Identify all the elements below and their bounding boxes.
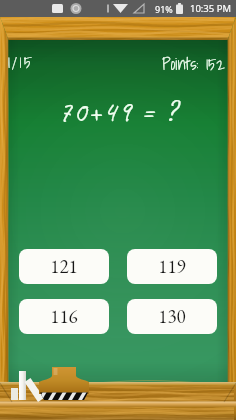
staticText: 116: [50, 304, 78, 329]
button[interactable]: 130: [127, 299, 217, 334]
button[interactable]: 119: [127, 249, 217, 284]
staticText: 1/15: [8, 48, 34, 75]
staticText: 91%: [155, 3, 173, 15]
staticText: Points: 152: [162, 50, 225, 77]
staticText: 121: [50, 254, 78, 279]
staticText: 10:35 PM: [190, 2, 231, 15]
button[interactable]: 116: [19, 299, 109, 334]
button[interactable]: 121: [19, 249, 109, 284]
staticText: 70+49 = ?: [58, 92, 178, 130]
staticText: 119: [158, 254, 186, 279]
button[interactable]: Eraser and chalk: [6, 365, 92, 403]
staticText: 130: [158, 304, 186, 329]
